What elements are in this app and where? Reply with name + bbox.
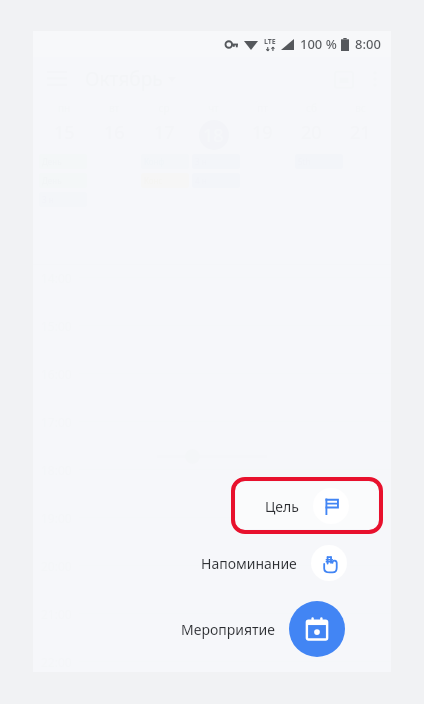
button[interactable]: Цель (236, 482, 378, 529)
other: Мероприятие (289, 601, 345, 657)
other: Напоминание (311, 545, 347, 581)
staticText: 100 % (300, 35, 337, 53)
other: Цель (313, 488, 349, 524)
staticText: Мероприятие (181, 620, 275, 639)
staticText: Цель (265, 497, 299, 516)
staticText: 8:00 (355, 35, 381, 53)
button[interactable]: Напоминание (201, 545, 347, 581)
button[interactable]: Мероприятие (181, 601, 345, 657)
staticText: Напоминание (201, 554, 297, 573)
staticText: LTE (264, 37, 276, 47)
